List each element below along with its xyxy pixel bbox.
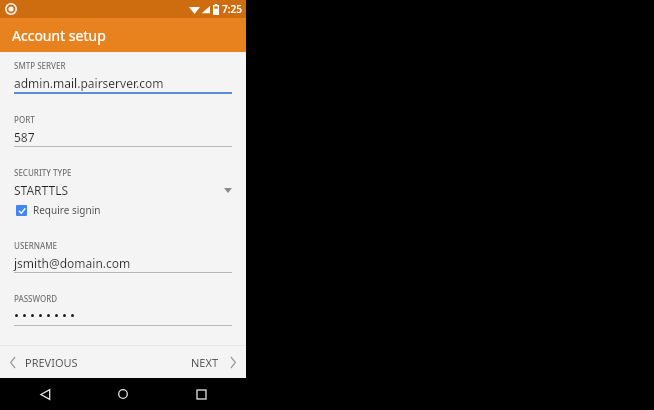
button[interactable]: 587 — [0, 127, 246, 147]
staticText: USERNAME — [14, 240, 58, 251]
button[interactable]: Home — [110, 381, 136, 407]
button[interactable]: Back — [32, 381, 58, 407]
staticText: PREVIOUS — [25, 355, 78, 370]
other: Open security type dropdown — [224, 188, 232, 193]
button[interactable]: NEXT — [181, 346, 246, 378]
button[interactable]: Require signin — [0, 200, 246, 220]
staticText: PORT — [14, 114, 35, 125]
staticText: admin.mail.pairserver.com — [14, 75, 164, 91]
staticText: Account setup — [12, 26, 106, 45]
staticText: jsmith@domain.com — [14, 255, 131, 271]
staticText: Require signin — [33, 203, 101, 217]
staticText: 587 — [14, 129, 35, 145]
button[interactable]: PREVIOUS — [0, 346, 88, 378]
button[interactable]: admin.mail.pairserver.com — [0, 73, 246, 94]
staticText: SECURITY TYPE — [14, 167, 72, 178]
staticText: SMTP SERVER — [14, 60, 66, 71]
staticText: NEXT — [191, 355, 219, 370]
button[interactable]: STARTTLS — [0, 180, 246, 200]
staticText: PASSWORD — [14, 293, 58, 304]
staticText: 7:25 — [222, 2, 242, 16]
button[interactable]: Recent apps — [188, 381, 214, 407]
button[interactable]: jsmith@domain.com — [0, 253, 246, 273]
button[interactable] — [0, 306, 246, 326]
staticText: STARTTLS — [14, 182, 69, 198]
